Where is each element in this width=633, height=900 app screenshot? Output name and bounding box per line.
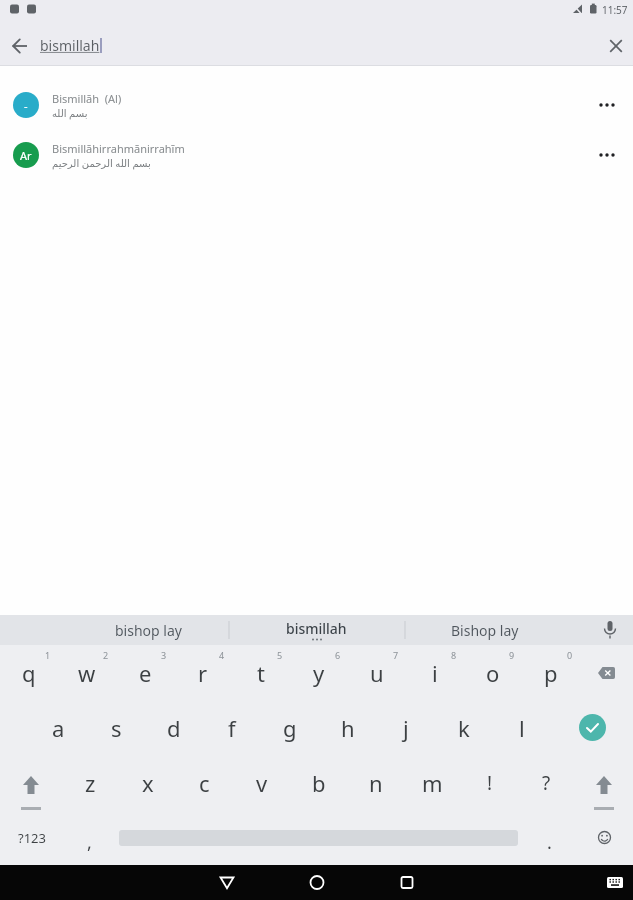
button[interactable] <box>583 865 633 900</box>
staticText: j <box>403 713 409 743</box>
staticText: l <box>519 713 525 743</box>
button[interactable]: x <box>119 755 176 810</box>
staticText: i <box>432 658 438 688</box>
button[interactable]: q <box>0 645 58 700</box>
staticText: 3 <box>161 649 167 661</box>
staticText: x <box>142 768 154 798</box>
staticText: ?123 <box>18 829 46 847</box>
staticText: 9 <box>509 649 515 661</box>
staticText: 0 <box>567 649 573 661</box>
staticText: n <box>369 768 383 798</box>
button[interactable]: r <box>174 645 232 700</box>
button[interactable]: p <box>522 645 580 700</box>
button[interactable]: ? <box>518 755 575 810</box>
staticText: بسم الله <box>52 106 88 120</box>
staticText: 6 <box>335 649 341 661</box>
staticText: bismillah <box>286 619 347 638</box>
staticText: u <box>370 658 384 688</box>
button[interactable] <box>115 810 522 865</box>
staticText: d <box>167 713 181 743</box>
button[interactable] <box>8 32 36 60</box>
button[interactable] <box>182 865 272 900</box>
staticText: 1 <box>45 649 51 661</box>
button[interactable]: k <box>435 700 493 755</box>
button[interactable] <box>587 135 627 175</box>
staticText: 5 <box>277 649 283 661</box>
staticText: o <box>486 658 500 688</box>
staticText: - <box>24 98 28 113</box>
button[interactable]: h <box>319 700 377 755</box>
staticText: c <box>199 768 210 798</box>
button[interactable] <box>575 755 632 810</box>
staticText: e <box>139 658 152 688</box>
button[interactable] <box>272 865 362 900</box>
button[interactable] <box>362 865 452 900</box>
staticText: . <box>547 830 552 855</box>
button[interactable]: o <box>464 645 522 700</box>
button[interactable]: bismillah <box>236 615 396 645</box>
staticText: s <box>111 713 122 743</box>
staticText: 7 <box>393 649 399 661</box>
staticText: z <box>85 768 96 798</box>
button[interactable]: ?123 <box>0 810 63 865</box>
staticText: b <box>312 768 326 798</box>
button[interactable]: - <box>0 80 633 130</box>
staticText: w <box>78 658 96 688</box>
button[interactable]: . <box>522 810 576 865</box>
staticText: h <box>341 713 355 743</box>
button[interactable] <box>587 85 627 125</box>
button[interactable]: bishop lay <box>68 615 228 645</box>
button[interactable]: u <box>348 645 406 700</box>
staticText: r <box>198 658 208 688</box>
staticText: 8 <box>451 649 457 661</box>
button[interactable]: m <box>404 755 461 810</box>
button[interactable]: z <box>62 755 119 810</box>
button[interactable]: Bishop lay <box>405 615 565 645</box>
button[interactable]: c <box>176 755 233 810</box>
button[interactable] <box>551 700 633 755</box>
staticText: بسم الله الرحمن الرحيم <box>52 156 151 170</box>
staticText: f <box>228 713 236 743</box>
button[interactable]: j <box>377 700 435 755</box>
button[interactable] <box>604 34 628 58</box>
button[interactable]: g <box>261 700 319 755</box>
staticText: Bishop lay <box>451 621 519 640</box>
staticText: 11:57 <box>602 3 628 17</box>
button[interactable]: v <box>233 755 290 810</box>
button[interactable] <box>0 755 62 810</box>
staticText: bismillah <box>40 36 100 55</box>
button[interactable]: n <box>347 755 404 810</box>
button[interactable]: w <box>58 645 116 700</box>
button[interactable]: t <box>232 645 290 700</box>
button[interactable]: s <box>87 700 145 755</box>
staticText: q <box>22 658 36 688</box>
button[interactable]: e <box>116 645 174 700</box>
button[interactable] <box>580 645 633 700</box>
staticText: 2 <box>103 649 109 661</box>
staticText: a <box>52 713 65 743</box>
button[interactable] <box>576 810 633 865</box>
staticText: Bismillāhirrahmānirrahīm <box>52 141 185 156</box>
staticText: y <box>313 658 325 688</box>
staticText: p <box>544 658 558 688</box>
staticText: g <box>283 713 297 743</box>
button[interactable]: Ar <box>0 130 633 180</box>
staticText: Bismillāh (Al) <box>52 91 122 106</box>
staticText: , <box>87 830 92 855</box>
staticText: m <box>422 768 443 798</box>
button[interactable]: f <box>203 700 261 755</box>
button[interactable]: y <box>290 645 348 700</box>
staticText: v <box>256 768 268 798</box>
button[interactable]: , <box>63 810 115 865</box>
staticText: ! <box>487 770 493 796</box>
staticText: k <box>458 713 470 743</box>
staticText: bishop lay <box>115 621 182 640</box>
staticText: Ar <box>20 148 32 163</box>
button[interactable]: l <box>493 700 551 755</box>
button[interactable]: i <box>406 645 464 700</box>
button[interactable]: a <box>29 700 87 755</box>
staticText: t <box>257 658 265 688</box>
button[interactable]: b <box>290 755 347 810</box>
button[interactable]: ! <box>461 755 518 810</box>
button[interactable]: d <box>145 700 203 755</box>
